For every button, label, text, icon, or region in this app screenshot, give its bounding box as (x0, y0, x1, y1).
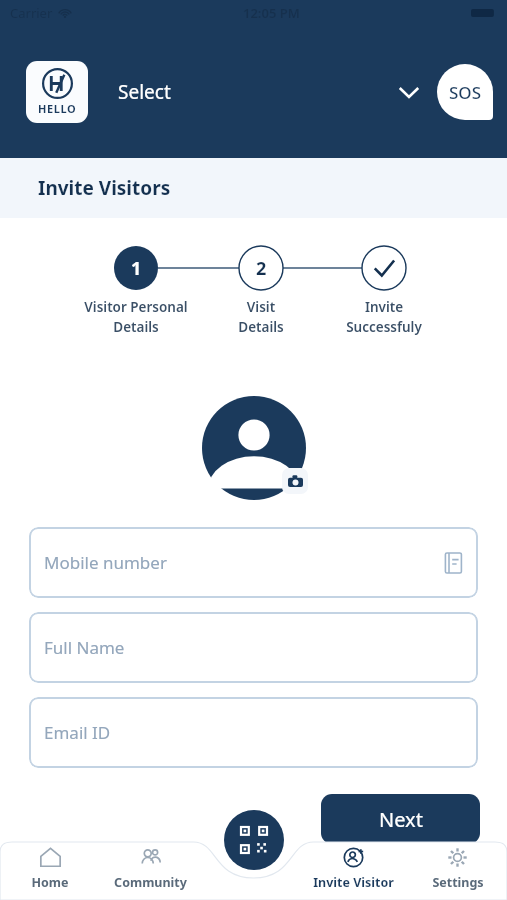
button[interactable]: Scan QR code (224, 810, 284, 870)
staticText: Mobile number (44, 551, 443, 574)
staticText: Settings (432, 874, 484, 891)
button[interactable]: Select (118, 79, 387, 105)
staticText: Select (118, 79, 171, 105)
staticText: 1 (131, 256, 142, 281)
button[interactable]: Full Name (29, 612, 478, 683)
staticText: Community (114, 874, 187, 891)
button[interactable]: HELLO (26, 61, 88, 123)
button[interactable]: Community (100, 846, 200, 900)
button[interactable]: SOS (437, 64, 493, 120)
staticText: 2 (256, 256, 267, 281)
staticText: Invite Successfuly (346, 298, 422, 336)
staticText: SOS (449, 81, 482, 104)
staticText: 12:05 PM (243, 4, 300, 22)
staticText: Carrier (10, 4, 53, 22)
button[interactable]: Invite Visitor (299, 846, 408, 900)
button[interactable]: Email ID (29, 697, 478, 768)
staticText: Visit Details (238, 298, 284, 336)
staticText: Full Name (44, 636, 463, 659)
staticText: Next (379, 806, 423, 833)
button[interactable]: Change photo (202, 396, 306, 500)
staticText: Invite Visitors (38, 175, 171, 201)
button[interactable]: Settings (408, 846, 507, 900)
staticText: Home (31, 874, 69, 891)
staticText: Visitor Personal Details (84, 298, 188, 336)
button[interactable]: Home (0, 846, 100, 900)
staticText: Invite Visitor (313, 874, 394, 891)
button[interactable]: Mobile number (29, 527, 478, 598)
button[interactable]: Next (321, 794, 480, 844)
button[interactable]: Expand (387, 70, 431, 114)
staticText: HELLO (38, 101, 77, 116)
staticText: Email ID (44, 721, 463, 744)
